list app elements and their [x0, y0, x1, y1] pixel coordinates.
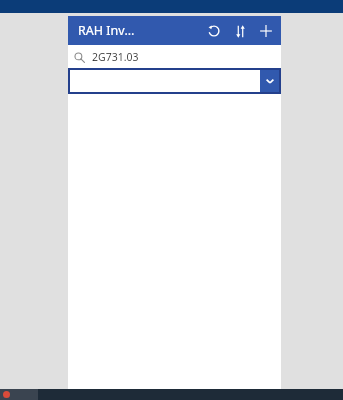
- button[interactable]: Start: [3, 391, 10, 398]
- button[interactable]: Refresh: [201, 18, 227, 44]
- button[interactable]: Select item: [68, 68, 281, 94]
- button[interactable]: 2G731.03: [68, 45, 281, 68]
- staticText: RAH Inventory Sto...: [78, 22, 139, 39]
- button[interactable]: Add: [253, 18, 279, 44]
- staticText: 2G731.03: [92, 50, 139, 64]
- button[interactable]: Sort: [227, 18, 253, 44]
